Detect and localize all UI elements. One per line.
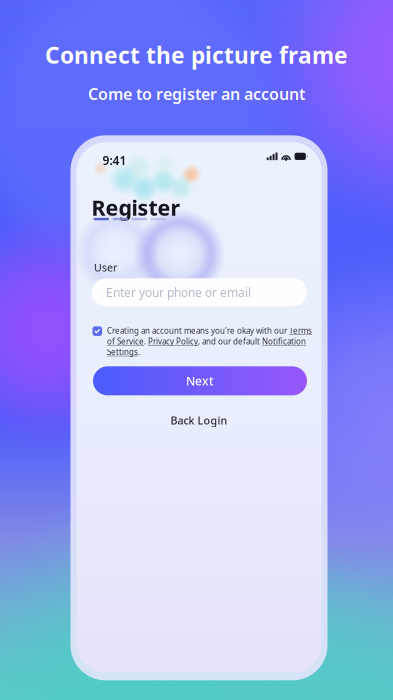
staticText: Creating an account means you're okay wi…	[107, 325, 312, 357]
staticText: Next	[186, 373, 214, 389]
staticText: User	[94, 260, 117, 274]
button[interactable]: Enter your phone or email	[92, 278, 307, 306]
staticText: Enter your phone or email	[106, 284, 251, 300]
staticText: Connect the picture frame	[45, 40, 348, 70]
staticText: Back Login	[170, 413, 227, 427]
staticText: Come to register an account	[88, 83, 305, 104]
staticText: 9:41	[102, 152, 126, 168]
button[interactable]: Agree to the terms	[92, 326, 102, 336]
button[interactable]: Next	[93, 366, 307, 395]
button[interactable]: Back Login	[159, 412, 239, 428]
staticText: Register	[91, 193, 180, 222]
